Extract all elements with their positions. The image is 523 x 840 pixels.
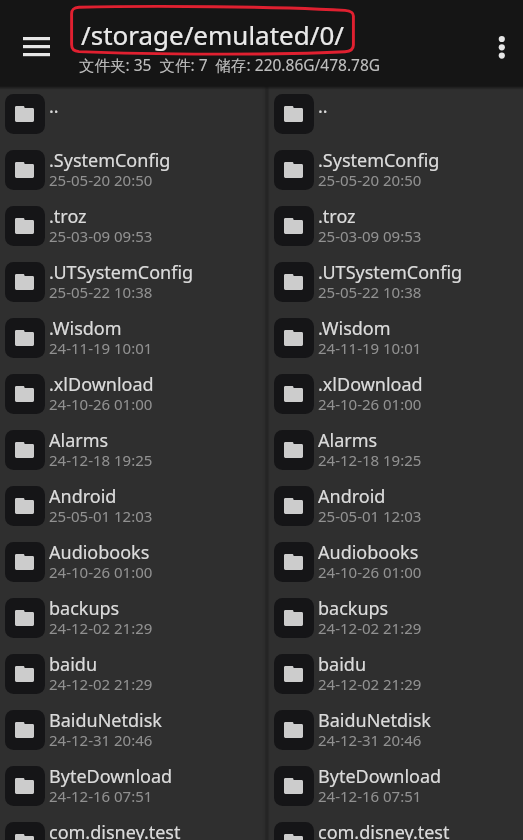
- staticText: 25-05-22 10:38: [318, 282, 422, 302]
- staticText: 25-05-22 10:38: [49, 282, 153, 302]
- staticText: .UTSystemConfig: [318, 260, 463, 285]
- button[interactable]: .troz: [269, 198, 523, 254]
- staticText: BaiduNetdisk: [318, 708, 431, 733]
- staticText: backups: [318, 596, 389, 621]
- staticText: 25-05-01 12:03: [318, 506, 422, 526]
- button[interactable]: backups: [0, 590, 259, 646]
- staticText: 24-12-02 21:29: [49, 618, 153, 638]
- staticText: ..: [49, 94, 59, 119]
- staticText: ByteDownload: [318, 764, 442, 789]
- staticText: .UTSystemConfig: [49, 260, 194, 285]
- staticText: .SystemConfig: [49, 148, 171, 173]
- button[interactable]: baidu: [0, 646, 259, 702]
- staticText: Alarms: [318, 428, 378, 453]
- button[interactable]: baidu: [269, 646, 523, 702]
- staticText: com.disney.test: [49, 820, 181, 840]
- staticText: 24-12-31 20:46: [49, 730, 153, 750]
- staticText: 24-12-31 20:46: [318, 730, 422, 750]
- staticText: ByteDownload: [49, 764, 173, 789]
- staticText: 24-12-02 21:29: [318, 618, 422, 638]
- button[interactable]: BaiduNetdisk: [269, 702, 523, 758]
- staticText: baidu: [49, 652, 98, 677]
- staticText: 25-03-09 09:53: [49, 226, 153, 246]
- staticText: 25-05-20 20:50: [318, 170, 422, 190]
- staticText: 文件夹: 35 文件: 7 储存: 220.86G/478.78G: [79, 54, 381, 75]
- button[interactable]: ByteDownload: [269, 758, 523, 814]
- button[interactable]: Menu: [12, 24, 56, 68]
- staticText: 25-05-20 20:50: [49, 170, 153, 190]
- button[interactable]: Android: [0, 478, 259, 534]
- staticText: Alarms: [49, 428, 109, 453]
- staticText: .SystemConfig: [318, 148, 440, 173]
- staticText: .Wisdom: [318, 316, 391, 341]
- staticText: backups: [49, 596, 120, 621]
- staticText: com.disney.test: [318, 820, 450, 840]
- button[interactable]: More options: [479, 24, 523, 68]
- button[interactable]: ..: [269, 86, 523, 142]
- button[interactable]: Android: [269, 478, 523, 534]
- button[interactable]: .UTSystemConfig: [0, 254, 259, 310]
- staticText: .troz: [318, 204, 356, 229]
- staticText: Android: [318, 484, 386, 509]
- staticText: 24-12-16 07:51: [318, 786, 422, 806]
- staticText: .xlDownload: [318, 372, 423, 397]
- staticText: BaiduNetdisk: [49, 708, 162, 733]
- button[interactable]: Alarms: [269, 422, 523, 478]
- staticText: 24-12-02 21:29: [318, 674, 422, 694]
- button[interactable]: backups: [269, 590, 523, 646]
- staticText: 25-05-01 12:03: [49, 506, 153, 526]
- staticText: ..: [318, 94, 328, 119]
- staticText: Audiobooks: [49, 540, 150, 565]
- button[interactable]: BaiduNetdisk: [0, 702, 259, 758]
- staticText: 24-10-26 01:00: [49, 394, 153, 414]
- staticText: 24-11-19 10:01: [318, 338, 422, 358]
- button[interactable]: ..: [0, 86, 259, 142]
- staticText: Audiobooks: [318, 540, 419, 565]
- button[interactable]: .xlDownload: [269, 366, 523, 422]
- button[interactable]: Alarms: [0, 422, 259, 478]
- button[interactable]: .SystemConfig: [269, 142, 523, 198]
- staticText: 24-12-18 19:25: [49, 450, 153, 470]
- button[interactable]: .xlDownload: [0, 366, 259, 422]
- staticText: .xlDownload: [49, 372, 154, 397]
- button[interactable]: .Wisdom: [0, 310, 259, 366]
- button[interactable]: .UTSystemConfig: [269, 254, 523, 310]
- button[interactable]: com.disney.test: [269, 814, 523, 840]
- button[interactable]: ByteDownload: [0, 758, 259, 814]
- staticText: .troz: [49, 204, 87, 229]
- staticText: 24-12-02 21:29: [49, 674, 153, 694]
- staticText: Android: [49, 484, 117, 509]
- staticText: 24-10-26 01:00: [49, 562, 153, 582]
- button[interactable]: Audiobooks: [0, 534, 259, 590]
- staticText: .Wisdom: [49, 316, 122, 341]
- button[interactable]: Audiobooks: [269, 534, 523, 590]
- staticText: 24-12-18 19:25: [318, 450, 422, 470]
- staticText: 24-12-16 07:51: [49, 786, 153, 806]
- staticText: 24-11-19 10:01: [49, 338, 153, 358]
- staticText: 25-03-09 09:53: [318, 226, 422, 246]
- staticText: 24-10-26 01:00: [318, 562, 422, 582]
- button[interactable]: .Wisdom: [269, 310, 523, 366]
- button[interactable]: com.disney.test: [0, 814, 259, 840]
- button[interactable]: .troz: [0, 198, 259, 254]
- staticText: 24-10-26 01:00: [318, 394, 422, 414]
- button[interactable]: .SystemConfig: [0, 142, 259, 198]
- staticText: baidu: [318, 652, 367, 677]
- staticText: /storage/emulated/0/: [81, 17, 344, 52]
